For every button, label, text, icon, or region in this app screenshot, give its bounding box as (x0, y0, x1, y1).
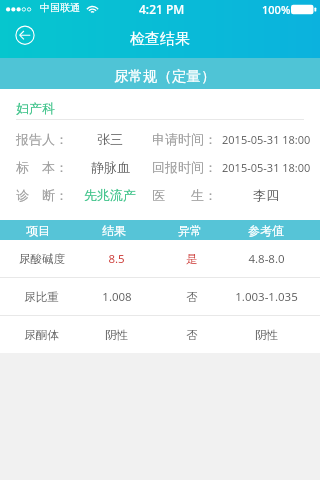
staticText: 妇产科 (16, 100, 55, 116)
staticText: 1.003-1.035 (235, 289, 298, 305)
staticText: 尿酮体 (24, 328, 59, 342)
button[interactable]: 尿比重 (0, 278, 320, 315)
staticText: 结果 (102, 223, 126, 238)
staticText: 尿酸碱度 (19, 252, 65, 266)
staticText: 否 (186, 328, 198, 342)
staticText: 参考值 (248, 223, 284, 238)
staticText: 报告人： (16, 131, 68, 147)
staticText: 2015-05-31 18:00 (222, 132, 311, 147)
staticText: 回报时间： (152, 159, 217, 175)
staticText: 检查结果 (130, 30, 190, 49)
staticText: 阴性 (105, 328, 128, 342)
staticText: 项目 (26, 223, 50, 238)
staticText: 异常 (178, 223, 202, 238)
staticText: 静脉血 (91, 159, 130, 175)
staticText: 100% (262, 2, 291, 17)
staticText: 4.8-8.0 (248, 251, 285, 267)
staticText: 8.5 (108, 251, 125, 267)
staticText: 否 (186, 290, 198, 304)
staticText: 中国联通 (40, 1, 80, 14)
staticText: 4:21 PM (139, 1, 185, 17)
staticText: 尿常规（定量） (114, 67, 216, 85)
staticText: 李四 (253, 187, 279, 203)
staticText: 诊 断： (16, 186, 68, 204)
staticText: 先兆流产 (84, 187, 136, 203)
staticText: 申请时间： (152, 131, 217, 147)
staticText: 是 (186, 252, 198, 266)
staticText: 1.008 (102, 289, 132, 305)
staticText: 标 本： (16, 158, 68, 176)
staticText: 尿比重 (24, 290, 59, 304)
staticText: 医 生： (152, 186, 217, 204)
staticText: 张三 (97, 131, 123, 147)
button[interactable]: 尿酮体 (0, 316, 320, 353)
button[interactable]: Back (9, 20, 41, 52)
button[interactable]: 尿酸碱度 (0, 240, 320, 277)
staticText: 阴性 (255, 328, 278, 342)
staticText: 2015-05-31 18:00 (222, 160, 311, 175)
